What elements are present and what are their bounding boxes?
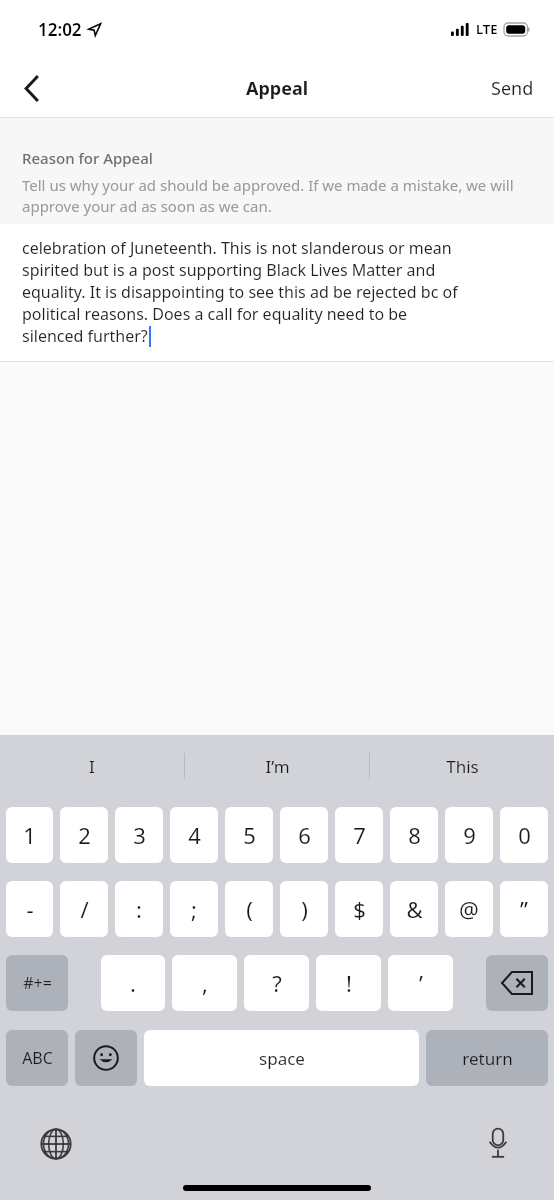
button[interactable]: 3: [115, 807, 163, 863]
staticText: 3: [133, 820, 146, 850]
button[interactable]: Send: [471, 58, 554, 118]
button[interactable]: return: [426, 1030, 548, 1086]
staticText: #+=: [23, 972, 52, 994]
button[interactable]: 4: [170, 807, 218, 863]
button[interactable]: 2: [60, 807, 108, 863]
button[interactable]: America and what I learned from this boo…: [0, 224, 554, 362]
staticText: -: [26, 894, 34, 924]
staticText: .: [130, 968, 136, 998]
staticText: LTE: [476, 20, 498, 38]
staticText: @: [459, 894, 479, 924]
button[interactable]: ): [280, 881, 328, 937]
staticText: &: [406, 894, 423, 924]
button[interactable]: .: [101, 955, 165, 1011]
staticText: ,: [202, 968, 208, 998]
button[interactable]: Backspace: [486, 955, 548, 1011]
button[interactable]: Change keyboard: [30, 1118, 82, 1170]
button[interactable]: -: [6, 881, 53, 937]
staticText: celebration of Juneteenth. This is not s…: [22, 237, 452, 259]
staticText: I: [89, 755, 95, 778]
button[interactable]: ”: [500, 881, 548, 937]
staticText: I’m: [265, 755, 290, 778]
button[interactable]: !: [316, 955, 381, 1011]
button[interactable]: This: [370, 735, 554, 797]
button[interactable]: :: [115, 881, 163, 937]
button[interactable]: (: [225, 881, 273, 937]
button[interactable]: ,: [172, 955, 237, 1011]
button[interactable]: Dictation: [472, 1118, 524, 1170]
staticText: ABC: [22, 1047, 53, 1069]
staticText: 1: [23, 820, 36, 850]
staticText: This: [446, 755, 479, 778]
button[interactable]: ;: [170, 881, 218, 937]
staticText: :: [136, 894, 142, 924]
staticText: spirited but is a post supporting Black …: [22, 259, 436, 281]
staticText: 2: [78, 820, 91, 850]
staticText: silenced further?: [22, 325, 148, 347]
staticText: space: [259, 1047, 305, 1070]
staticText: /: [80, 894, 89, 924]
staticText: (: [246, 894, 253, 924]
staticText: 7: [353, 820, 366, 850]
button[interactable]: Emoji: [75, 1030, 137, 1086]
button[interactable]: I’m: [185, 735, 369, 797]
staticText: equality. It is disappointing to see thi…: [22, 281, 458, 303]
button[interactable]: /: [60, 881, 108, 937]
button[interactable]: I: [0, 735, 184, 797]
staticText: ): [301, 894, 308, 924]
button[interactable]: 5: [225, 807, 273, 863]
staticText: ”: [520, 894, 528, 924]
staticText: 12:02: [38, 18, 82, 41]
button[interactable]: space: [144, 1030, 419, 1086]
staticText: return: [462, 1047, 513, 1070]
button[interactable]: ’: [388, 955, 453, 1011]
button[interactable]: @: [445, 881, 493, 937]
button[interactable]: 6: [280, 807, 328, 863]
staticText: 9: [463, 820, 476, 850]
staticText: Reason for Appeal: [22, 148, 153, 168]
button[interactable]: 0: [500, 807, 548, 863]
button[interactable]: &: [390, 881, 438, 937]
staticText: ?: [272, 968, 282, 998]
staticText: ’: [419, 968, 423, 998]
button[interactable]: #+=: [6, 955, 68, 1011]
staticText: ;: [191, 894, 197, 924]
staticText: 0: [518, 820, 531, 850]
button[interactable]: Back: [0, 58, 64, 118]
staticText: $: [353, 894, 366, 924]
button[interactable]: $: [335, 881, 383, 937]
staticText: !: [346, 968, 352, 998]
staticText: 4: [188, 820, 201, 850]
button[interactable]: 7: [335, 807, 383, 863]
button[interactable]: ABC: [6, 1030, 68, 1086]
button[interactable]: 9: [445, 807, 493, 863]
staticText: Tell us why your ad should be approved. …: [22, 175, 532, 217]
staticText: 5: [243, 820, 256, 850]
staticText: political reasons. Does a call for equal…: [22, 303, 408, 325]
button[interactable]: ?: [244, 955, 309, 1011]
button[interactable]: 8: [390, 807, 438, 863]
staticText: 6: [298, 820, 311, 850]
staticText: 8: [408, 820, 421, 850]
staticText: Send: [491, 76, 534, 101]
staticText: Appeal: [246, 76, 309, 101]
button[interactable]: 1: [6, 807, 53, 863]
